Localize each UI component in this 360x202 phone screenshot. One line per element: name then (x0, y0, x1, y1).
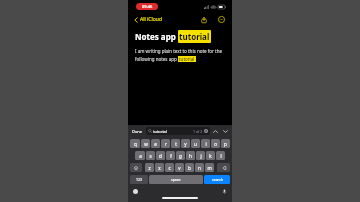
staticText: m (207, 165, 212, 171)
staticText: t (175, 141, 177, 147)
staticText: search (212, 177, 223, 182)
staticText: k (209, 153, 212, 159)
staticText: c (168, 165, 171, 171)
button[interactable]: All iCloud (133, 14, 164, 25)
button[interactable]: t (171, 139, 180, 148)
button[interactable]: x (155, 163, 164, 172)
staticText: 1 of 2 (193, 129, 203, 134)
staticText: n (198, 165, 201, 171)
staticText: Done (132, 129, 143, 134)
staticText: e (154, 141, 157, 147)
button[interactable]: Emoji (132, 188, 139, 195)
button[interactable]: Backspace (217, 163, 230, 172)
staticText: tutorial (179, 56, 195, 62)
staticText: tutorial (179, 31, 210, 42)
button[interactable]: q (130, 139, 140, 148)
button[interactable]: l (216, 151, 225, 160)
button[interactable]: Dictate (221, 188, 228, 195)
staticText: w (144, 141, 148, 147)
staticText: i (205, 141, 207, 147)
button[interactable]: space (149, 175, 203, 184)
button[interactable]: u (191, 139, 200, 148)
staticText: All iCloud (140, 16, 163, 23)
staticText: tutorial (153, 129, 167, 134)
button[interactable]: p (221, 139, 230, 148)
button[interactable]: j (196, 151, 205, 160)
button[interactable]: b (185, 163, 194, 172)
button[interactable]: f (166, 151, 175, 160)
button[interactable]: w (141, 139, 150, 148)
staticText: r (165, 141, 167, 147)
button[interactable]: r (161, 139, 170, 148)
staticText: q (134, 141, 137, 147)
button[interactable]: a (135, 151, 145, 160)
button[interactable]: More (217, 15, 226, 24)
staticText: l (220, 153, 222, 159)
staticText: 09:46 (142, 4, 153, 9)
button[interactable]: c (165, 163, 174, 172)
staticText: 123 (136, 177, 143, 182)
button[interactable]: e (151, 139, 160, 148)
button[interactable]: tutorial (146, 127, 210, 135)
staticText: u (194, 141, 197, 147)
staticText: d (159, 153, 162, 159)
button[interactable]: Shift (130, 163, 142, 172)
button[interactable]: h (186, 151, 195, 160)
button[interactable]: Done (131, 127, 144, 136)
staticText: b (188, 165, 191, 171)
staticText: z (148, 165, 151, 171)
staticText: s (149, 153, 152, 159)
staticText: following notes app (135, 56, 178, 62)
button[interactable]: v (175, 163, 184, 172)
button[interactable]: Previous result (212, 128, 219, 135)
button[interactable]: z (145, 163, 154, 172)
button[interactable]: Clear (204, 129, 208, 133)
button[interactable]: y (181, 139, 190, 148)
staticText: p (224, 141, 227, 147)
button[interactable]: g (176, 151, 185, 160)
staticText: I am writing plain text to this note for… (135, 48, 222, 54)
staticText: v (178, 165, 181, 171)
button[interactable]: n (195, 163, 204, 172)
button[interactable]: o (211, 139, 220, 148)
button[interactable]: Next result (222, 128, 229, 135)
staticText: y (184, 141, 187, 147)
staticText: j (200, 153, 202, 159)
button[interactable]: Share (199, 15, 208, 24)
staticText: g (179, 153, 182, 159)
staticText: h (189, 153, 192, 159)
button[interactable]: s (146, 151, 155, 160)
staticText: o (214, 141, 217, 147)
button[interactable]: i (201, 139, 210, 148)
staticText: a (139, 153, 142, 159)
button[interactable]: d (156, 151, 165, 160)
button[interactable]: k (206, 151, 215, 160)
staticText: Notes app (135, 31, 178, 42)
button[interactable]: m (205, 163, 214, 172)
button[interactable]: search (204, 175, 230, 184)
staticText: x (158, 165, 161, 171)
staticText: f (170, 153, 172, 159)
button[interactable]: 123 (130, 175, 148, 184)
staticText: space (171, 177, 181, 182)
